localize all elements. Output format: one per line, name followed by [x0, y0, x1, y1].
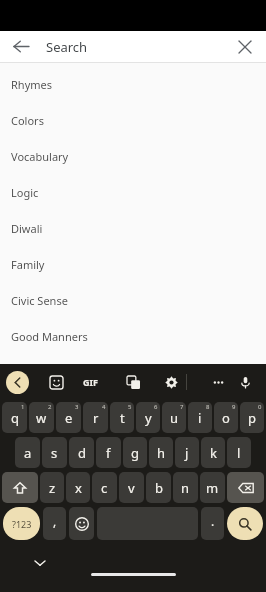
staticText: Good Manners [11, 329, 88, 344]
button[interactable]: Family [0, 246, 266, 282]
staticText: 5 [128, 403, 132, 411]
button[interactable]: s [42, 437, 67, 468]
button[interactable]: c [92, 472, 117, 503]
staticText: 3 [75, 403, 79, 411]
staticText: Vocabulary [11, 149, 69, 164]
staticText: l [237, 444, 241, 462]
staticText: d [78, 444, 86, 462]
button[interactable]: k [201, 437, 225, 468]
button[interactable]: f [96, 437, 121, 468]
staticText: 7 [180, 403, 184, 411]
staticText: h [157, 444, 166, 462]
staticText: Diwali [11, 221, 43, 236]
button[interactable]: o [214, 402, 238, 433]
staticText: k [210, 444, 217, 462]
button[interactable]: Back [4, 31, 38, 62]
button[interactable]: Stickers [43, 369, 69, 395]
staticText: 4 [102, 403, 106, 411]
button[interactable]: Shift [2, 472, 38, 503]
staticText: o [222, 409, 230, 427]
button[interactable]: Hide keyboard [28, 551, 52, 575]
button[interactable]: q [2, 402, 27, 433]
button[interactable]: Diwali [0, 210, 266, 246]
button[interactable]: Logic [0, 174, 266, 210]
button[interactable]: e [56, 402, 81, 433]
button[interactable]: Civic Sense [0, 282, 266, 318]
staticText: b [155, 479, 163, 497]
staticText: e [65, 409, 73, 427]
staticText: p [248, 409, 256, 427]
staticText: f [106, 444, 111, 462]
button[interactable]: d [69, 437, 94, 468]
staticText: c [101, 479, 108, 497]
button[interactable]: Vocabulary [0, 138, 266, 174]
button[interactable]: Voice input [232, 369, 258, 395]
button[interactable]: g [123, 437, 147, 468]
staticText: Search [46, 38, 88, 56]
staticText: 8 [206, 403, 210, 411]
button[interactable]: p [240, 402, 264, 433]
button[interactable]: z [40, 472, 64, 503]
button[interactable]: Translate [120, 369, 146, 395]
button[interactable]: m [200, 472, 225, 503]
staticText: u [170, 409, 179, 427]
staticText: Logic [11, 185, 39, 200]
button[interactable]: Back [6, 371, 29, 394]
staticText: 6 [154, 403, 158, 411]
staticText: v [128, 479, 135, 497]
button[interactable]: u [162, 402, 186, 433]
button[interactable]: Settings [158, 369, 184, 395]
button[interactable]: More options [205, 369, 231, 395]
button[interactable]: ?123 [3, 507, 40, 540]
button[interactable]: Colors [0, 102, 266, 138]
button[interactable]: r [83, 402, 108, 433]
staticText: Family [11, 257, 45, 272]
staticText: z [49, 479, 56, 497]
staticText: x [75, 479, 82, 497]
button[interactable]: v [119, 472, 144, 503]
button[interactable]: w [29, 402, 54, 433]
staticText: a [24, 444, 32, 462]
staticText: s [51, 444, 58, 462]
button[interactable]: j [175, 437, 199, 468]
staticText: w [36, 409, 47, 427]
button[interactable]: t [110, 402, 134, 433]
button[interactable]: b [146, 472, 171, 503]
staticText: y [145, 409, 152, 427]
button[interactable]: h [149, 437, 173, 468]
staticText: Civic Sense [11, 293, 68, 308]
staticText: n [181, 479, 190, 497]
staticText: q [11, 409, 19, 427]
staticText: r [93, 409, 99, 427]
staticText: Colors [11, 113, 44, 128]
staticText: i [198, 409, 202, 427]
button[interactable]: a [15, 437, 40, 468]
staticText: 1 [21, 403, 25, 411]
staticText: . [211, 513, 215, 529]
button[interactable]: Emoji [69, 507, 94, 540]
staticText: Rhymes [11, 77, 53, 92]
button[interactable]: Backspace [227, 472, 264, 503]
button[interactable]: Search [227, 507, 263, 540]
staticText: j [185, 444, 189, 462]
button[interactable]: Clear [228, 31, 262, 62]
button[interactable]: i [188, 402, 212, 433]
button[interactable]: n [173, 472, 198, 503]
button[interactable]: l [227, 437, 251, 468]
staticText: 9 [232, 403, 236, 411]
button[interactable]: . [201, 507, 224, 540]
staticText: ?123 [12, 518, 32, 530]
staticText: g [131, 444, 139, 462]
staticText: GIF [83, 376, 98, 388]
button[interactable]: x [66, 472, 90, 503]
staticText: 0 [258, 403, 262, 411]
staticText: , [53, 513, 57, 529]
button[interactable]: y [136, 402, 160, 433]
staticText: 2 [48, 403, 52, 411]
button[interactable]: Good Manners [0, 318, 266, 354]
staticText: m [206, 479, 219, 497]
button[interactable]: Rhymes [0, 66, 266, 102]
staticText: t [120, 409, 125, 427]
button[interactable]: , [43, 507, 66, 540]
